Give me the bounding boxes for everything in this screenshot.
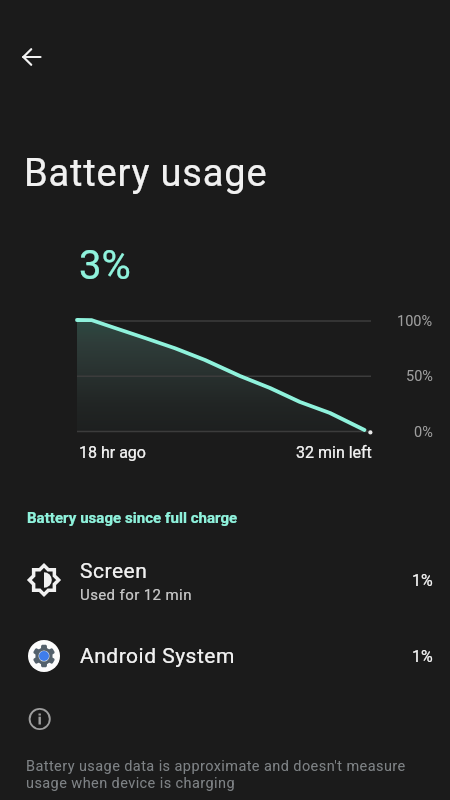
staticText: Battery usage since full charge xyxy=(27,509,238,527)
staticText: 32 min left xyxy=(296,443,372,462)
staticText: 1% xyxy=(412,647,433,666)
staticText: Used for 12 min xyxy=(80,586,192,604)
staticText: Battery usage data is approximate and do… xyxy=(26,758,406,792)
staticText: 0% xyxy=(414,424,433,441)
button[interactable]: Back xyxy=(11,37,51,77)
staticText: Android System xyxy=(80,644,235,669)
button[interactable]: Screen xyxy=(0,548,450,612)
staticText: 100% xyxy=(397,313,433,330)
other: Info xyxy=(28,708,52,732)
staticText: 1% xyxy=(412,571,433,590)
staticText: 18 hr ago xyxy=(79,443,146,462)
staticText: 50% xyxy=(406,368,433,385)
staticText: Battery usage xyxy=(24,151,268,196)
staticText: 3% xyxy=(79,242,131,289)
staticText: Screen xyxy=(80,559,148,584)
button[interactable]: Android System xyxy=(0,632,450,680)
